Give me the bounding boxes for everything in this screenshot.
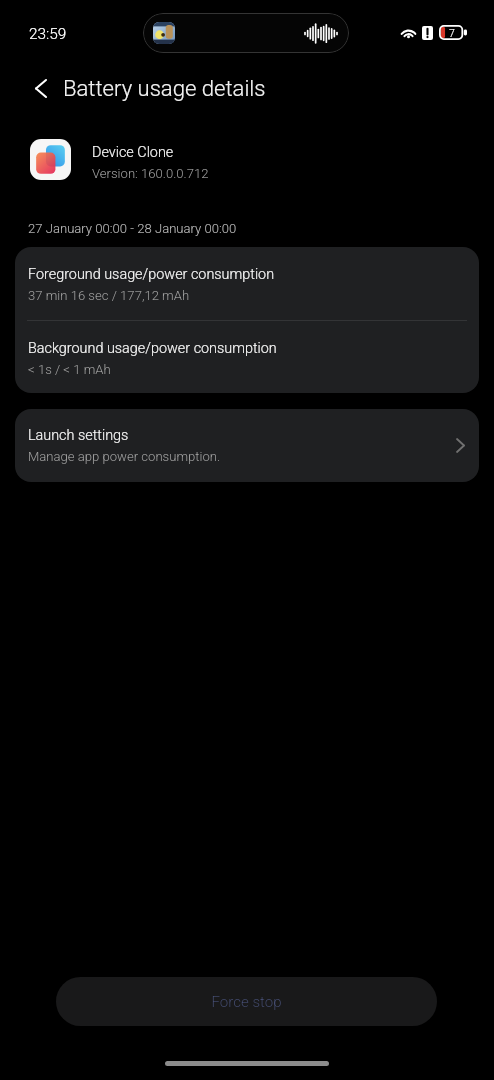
- staticText: Launch settings: [28, 427, 129, 444]
- button[interactable]: Back: [24, 71, 58, 105]
- staticText: Battery usage details: [63, 75, 266, 101]
- staticText: 23:59: [29, 25, 67, 43]
- staticText: Device Clone: [92, 144, 174, 161]
- button[interactable]: Background usage/power consumption: [15, 321, 479, 393]
- button[interactable]: Launch settings: [15, 409, 479, 482]
- staticText: 7: [449, 27, 455, 39]
- button[interactable]: Force stop: [56, 977, 437, 1026]
- button[interactable]: Foreground usage/power consumption: [15, 247, 479, 320]
- staticText: Background usage/power consumption: [28, 340, 277, 357]
- staticText: < 1s / < 1 mAh: [28, 362, 111, 377]
- staticText: Foreground usage/power consumption: [28, 266, 275, 283]
- button[interactable]: Now playing: [143, 13, 349, 53]
- staticText: Force stop: [211, 993, 282, 1011]
- staticText: 37 min 16 sec / 177,12 mAh: [28, 288, 190, 303]
- staticText: 27 January 00:00 - 28 January 00:00: [28, 221, 237, 236]
- staticText: Manage app power consumption.: [28, 449, 221, 464]
- staticText: Version: 160.0.0.712: [92, 166, 209, 181]
